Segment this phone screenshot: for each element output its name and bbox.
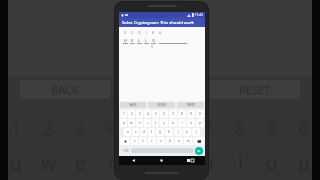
staticText: f: [151, 130, 153, 134]
button[interactable]: x: [139, 137, 147, 145]
button[interactable]: m: [184, 137, 192, 145]
staticText: 7: [172, 112, 174, 116]
button[interactable]: 7: [169, 110, 177, 118]
staticText: L: [138, 38, 141, 43]
button[interactable]: 6: [160, 116, 192, 140]
button[interactable]: Recent apps: [176, 156, 205, 165]
button[interactable]: g: [156, 128, 164, 136]
button[interactable]: Home: [147, 156, 176, 165]
staticText: B: [152, 30, 155, 35]
button[interactable]: 4: [144, 110, 151, 118]
staticText: BACK: [51, 82, 79, 97]
button[interactable]: z: [131, 137, 138, 145]
staticText: a: [127, 130, 129, 134]
button[interactable]: b: [166, 137, 174, 145]
button[interactable]: 2: [128, 110, 135, 118]
button[interactable]: 4: [96, 116, 128, 140]
button[interactable]: Send: [195, 147, 203, 155]
button[interactable]: t: [128, 150, 160, 174]
button[interactable]: r: [144, 119, 151, 127]
button[interactable]: e: [136, 119, 143, 127]
staticText: n: [178, 139, 180, 143]
staticText: O: [152, 38, 156, 43]
staticText: h: [168, 130, 170, 134]
button[interactable]: c: [148, 137, 156, 145]
button[interactable]: r: [96, 150, 128, 174]
button[interactable]: BACK: [120, 102, 146, 108]
button[interactable]: l: [192, 128, 200, 136]
button[interactable]: 3: [136, 110, 143, 118]
button[interactable]: q: [0, 150, 32, 174]
button[interactable]: ?123: [121, 146, 130, 155]
button[interactable]: Shift: [120, 137, 130, 145]
staticText: z: [134, 139, 136, 143]
button[interactable]: RESET: [210, 80, 300, 99]
staticText: o: [190, 121, 192, 125]
button[interactable]: u: [169, 119, 177, 127]
staticText: t: [141, 150, 148, 174]
staticText: q: [123, 121, 125, 125]
staticText: 7: [203, 117, 213, 140]
button[interactable]: 5: [152, 110, 159, 118]
staticText: 8: [181, 112, 183, 116]
staticText: 3: [139, 112, 141, 116]
button[interactable]: h: [165, 128, 173, 136]
button[interactable]: w: [128, 119, 135, 127]
button[interactable]: y: [160, 150, 192, 174]
button[interactable]: v: [157, 137, 165, 145]
staticText: 5: [139, 117, 149, 140]
button[interactable]: s: [132, 128, 139, 136]
button[interactable]: t: [152, 119, 159, 127]
button[interactable]: y: [160, 119, 168, 127]
button[interactable]: n: [175, 137, 183, 145]
button[interactable]: 8: [178, 110, 186, 118]
button[interactable]: 0: [196, 110, 204, 118]
button[interactable]: BACK: [20, 80, 110, 99]
staticText: v: [160, 139, 162, 143]
staticText: p: [199, 121, 201, 125]
button[interactable]: a: [124, 128, 131, 136]
button[interactable]: k: [183, 128, 191, 136]
staticText: d: [143, 130, 145, 134]
button[interactable]: 6: [160, 110, 168, 118]
button[interactable]: p: [196, 119, 204, 127]
button[interactable]: 1: [0, 116, 32, 140]
button[interactable]: u: [192, 150, 224, 174]
button[interactable]: p: [288, 150, 320, 174]
staticText: w: [41, 150, 56, 174]
button[interactable]: i: [178, 119, 186, 127]
button[interactable]: d: [140, 128, 147, 136]
button[interactable]: SOLVE: [148, 102, 175, 108]
staticText: r: [108, 150, 116, 174]
button[interactable]: 7: [192, 116, 224, 140]
button[interactable]: q: [120, 119, 127, 127]
button[interactable]: Backspace: [193, 137, 204, 145]
button[interactable]: 5: [128, 116, 160, 140]
button[interactable]: j: [174, 128, 182, 136]
button[interactable]: 9: [187, 110, 195, 118]
button[interactable]: Back: [119, 156, 147, 165]
staticText: L: [145, 38, 148, 43]
button[interactable]: RESET: [177, 102, 204, 108]
staticText: H: [124, 38, 127, 43]
button[interactable]: 1: [120, 110, 127, 118]
button[interactable]: 0: [288, 116, 320, 140]
button[interactable]: f: [148, 128, 155, 136]
button[interactable]: o: [187, 119, 195, 127]
staticText: 4: [147, 112, 149, 116]
staticText: 0: [299, 117, 309, 140]
staticText: o: [266, 150, 278, 174]
staticText: 9: [190, 112, 192, 116]
staticText: 5: [155, 112, 157, 116]
